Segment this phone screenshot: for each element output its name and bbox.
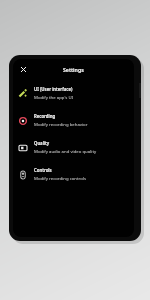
staticText: Modify recording behavior: [34, 121, 88, 127]
button[interactable]: Recording: [13, 112, 134, 128]
staticText: Recording: [34, 113, 56, 119]
button[interactable]: Quality: [13, 139, 134, 155]
staticText: Modify audio and video quality: [34, 148, 97, 154]
staticText: UI (User interface): [34, 86, 73, 92]
staticText: Controls: [34, 167, 52, 173]
button[interactable]: Close settings: [17, 63, 30, 76]
staticText: Modify the app's UI: [34, 94, 74, 100]
button[interactable]: Controls: [13, 166, 134, 182]
staticText: Modify recording controls: [34, 175, 86, 181]
staticText: Settings: [63, 66, 84, 73]
button[interactable]: UI (User interface): [13, 85, 134, 101]
staticText: Quality: [34, 140, 50, 146]
